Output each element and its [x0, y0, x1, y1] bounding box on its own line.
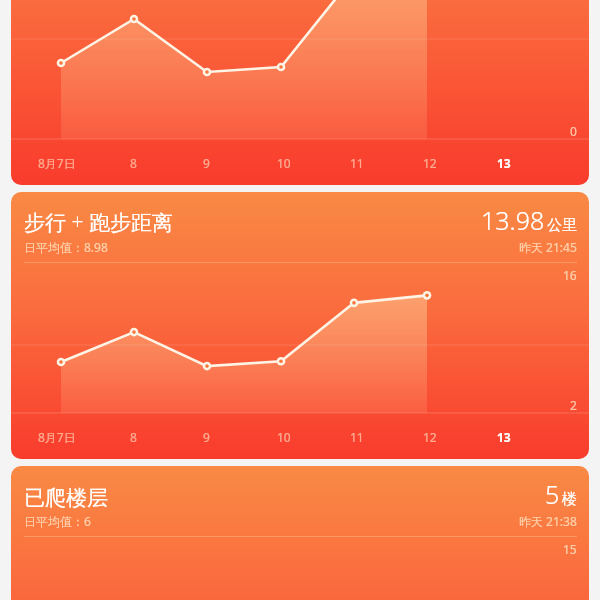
staticText: 9 [203, 429, 210, 445]
staticText: 5 [545, 477, 560, 511]
button[interactable]: 已爬楼层 [11, 466, 589, 600]
staticText: 0 [570, 123, 577, 139]
staticText: 公里 [547, 216, 577, 235]
staticText: 10 [277, 429, 291, 445]
staticText: 10 [277, 155, 291, 171]
staticText: 8 [130, 429, 137, 445]
staticText: 日平均值：6 [24, 513, 91, 529]
staticText: 13 [497, 429, 511, 445]
staticText: 8月7日 [38, 429, 76, 445]
staticText: 16 [563, 267, 577, 283]
staticText: 昨天 21:45 [519, 239, 577, 255]
staticText: 12 [423, 155, 437, 171]
staticText: 已爬楼层 [24, 485, 108, 511]
staticText: 8 [130, 155, 137, 171]
button[interactable]: 步行 [11, 0, 589, 185]
staticText: 13.98 [481, 203, 545, 237]
staticText: 2 [570, 397, 577, 413]
staticText: 楼 [562, 490, 577, 509]
staticText: 8月7日 [38, 155, 76, 171]
staticText: 11 [350, 155, 364, 171]
staticText: 13 [497, 155, 511, 171]
button[interactable]: 步行 + 跑步距离 [11, 192, 589, 459]
staticText: 15 [563, 541, 577, 557]
staticText: 步行 + 跑步距离 [24, 208, 173, 237]
staticText: 9 [203, 155, 210, 171]
staticText: 12 [423, 429, 437, 445]
staticText: 11 [350, 429, 364, 445]
staticText: 昨天 21:38 [519, 513, 577, 529]
staticText: 日平均值：8.98 [24, 239, 108, 255]
